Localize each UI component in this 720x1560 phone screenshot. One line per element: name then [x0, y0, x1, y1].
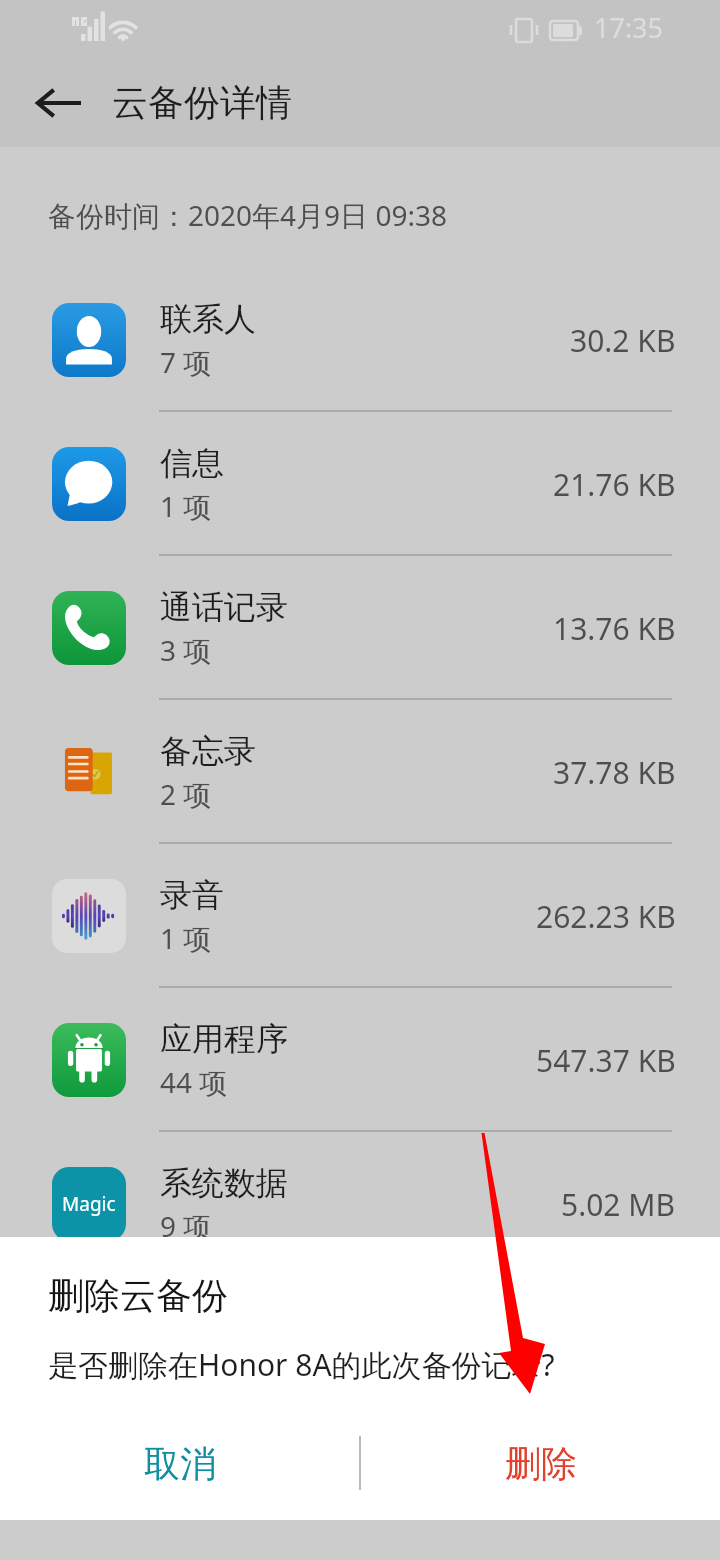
- staticText: Magic: [62, 1191, 116, 1217]
- button[interactable]: 通话记录: [0, 556, 720, 700]
- staticText: 44 项: [160, 1063, 228, 1101]
- staticText: 应用程序: [160, 1019, 288, 1059]
- button[interactable]: Back: [0, 58, 117, 147]
- staticText: 547.37 KB: [536, 1040, 676, 1081]
- staticText: 7 项: [160, 343, 212, 381]
- staticText: 系统数据: [160, 1163, 288, 1203]
- button[interactable]: 删除: [361, 1419, 720, 1507]
- staticText: 取消: [144, 1441, 216, 1486]
- staticText: 30.2 KB: [570, 320, 676, 361]
- staticText: 通话记录: [160, 587, 288, 627]
- button[interactable]: Magic: [0, 1132, 720, 1276]
- staticText: 信息: [160, 443, 224, 483]
- button[interactable]: 录音: [0, 844, 720, 988]
- staticText: 9 项: [160, 1207, 212, 1245]
- button[interactable]: 信息: [0, 412, 720, 556]
- staticText: 删除云备份: [48, 1273, 228, 1318]
- button[interactable]: 应用程序: [0, 988, 720, 1132]
- button[interactable]: 取消: [0, 1419, 359, 1507]
- staticText: 备份时间：2020年4月9日 09:38: [48, 196, 447, 234]
- staticText: 录音: [160, 875, 224, 915]
- staticText: 云备份详情: [112, 80, 292, 125]
- button[interactable]: 备忘录: [0, 700, 720, 844]
- staticText: 13.76 KB: [553, 608, 676, 649]
- staticText: 是否删除在Honor 8A的此次备份记录?: [48, 1344, 555, 1385]
- staticText: 262.23 KB: [536, 896, 676, 937]
- staticText: 1 项: [160, 487, 212, 525]
- staticText: 37.78 KB: [553, 752, 676, 793]
- staticText: 17:35: [594, 9, 664, 46]
- staticText: 2 项: [160, 775, 212, 813]
- staticText: 删除: [505, 1441, 577, 1486]
- staticText: 联系人: [160, 299, 256, 339]
- staticText: 备忘录: [160, 731, 256, 771]
- staticText: 1 项: [160, 919, 212, 957]
- staticText: 5.02 MB: [561, 1184, 676, 1225]
- staticText: 21.76 KB: [553, 464, 676, 505]
- staticText: 3 项: [160, 631, 212, 669]
- button[interactable]: 联系人: [0, 268, 720, 412]
